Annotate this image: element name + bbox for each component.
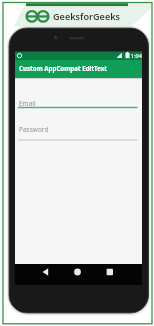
- button[interactable]: [70, 264, 86, 280]
- button[interactable]: Password: [18, 122, 138, 137]
- button[interactable]: [38, 264, 54, 280]
- staticText: 1:04: [131, 52, 142, 59]
- staticText: Custom AppCompat EditText: [19, 64, 108, 72]
- staticText: GeeksforGeeks: [53, 10, 121, 22]
- button[interactable]: [102, 264, 118, 280]
- button[interactable]: Email: [18, 96, 138, 111]
- staticText: Email: [19, 99, 36, 108]
- staticText: Password: [19, 125, 49, 134]
